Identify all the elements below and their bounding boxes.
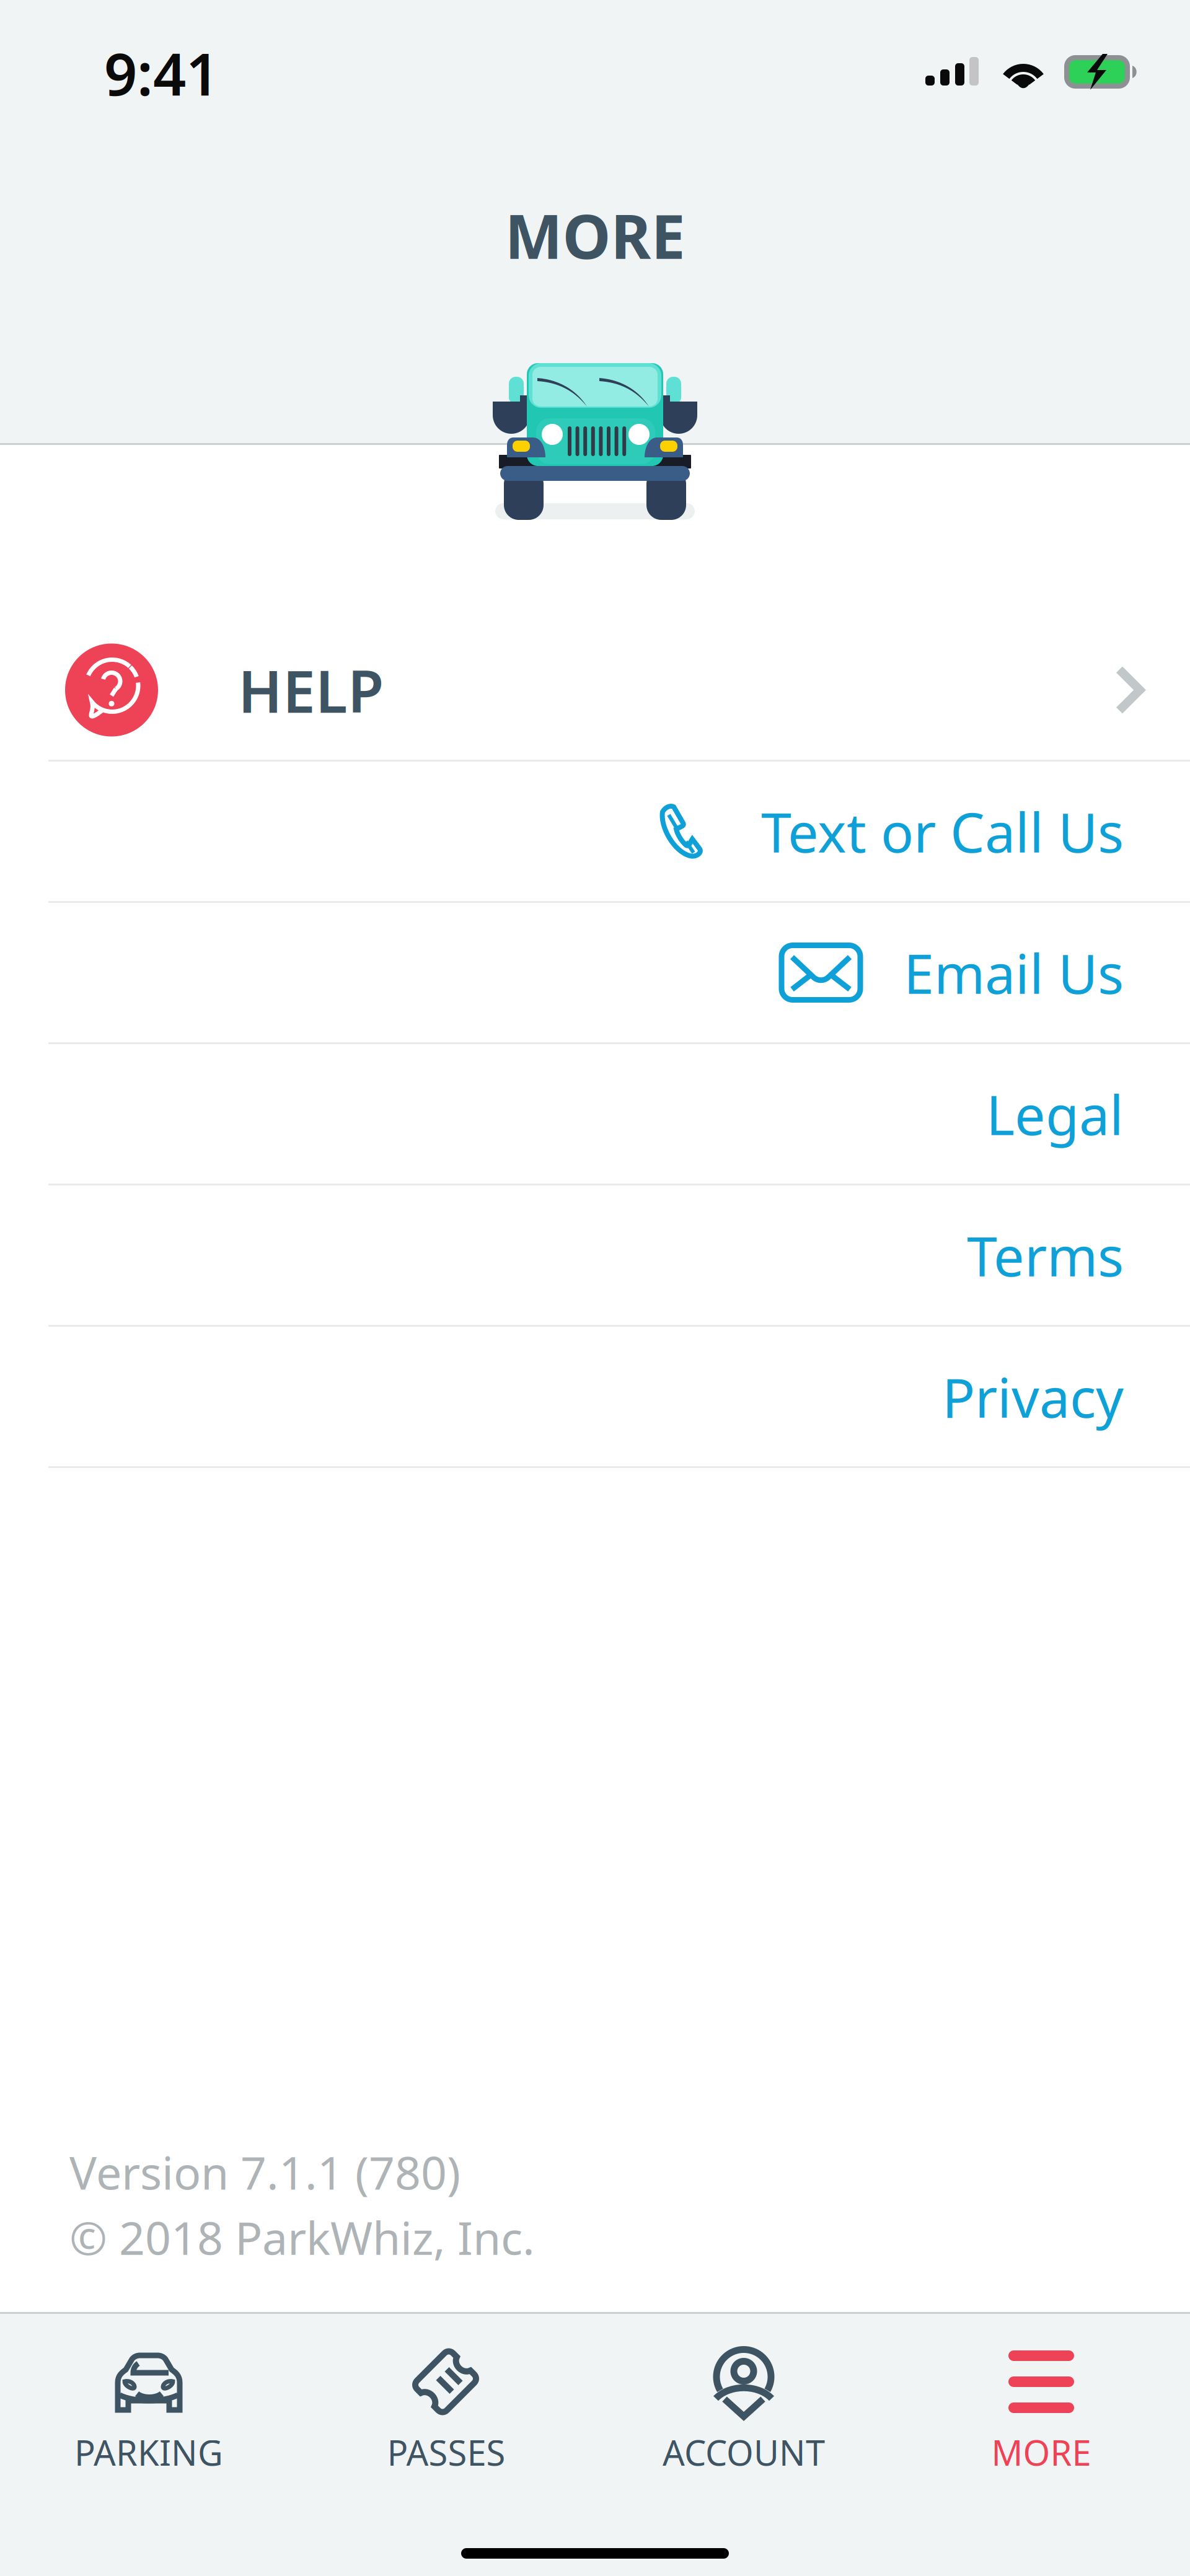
staticText: PASSES [387, 2429, 505, 2475]
staticText: Version 7.1.1 (780) [69, 2142, 461, 2202]
button[interactable]: Terms [0, 1185, 1190, 1327]
staticText: Email Us [904, 936, 1124, 1009]
button[interactable]: Legal [0, 1044, 1190, 1185]
button[interactable]: MORE [892, 2319, 1190, 2494]
button[interactable]: Email Us [0, 903, 1190, 1044]
button[interactable]: ACCOUNT [595, 2319, 892, 2494]
button[interactable]: PASSES [297, 2319, 595, 2494]
staticText: Text or Call Us [761, 795, 1124, 868]
button[interactable]: PARKING [0, 2319, 297, 2494]
button[interactable]: HELP [0, 620, 1190, 762]
staticText: MORE [505, 195, 685, 276]
staticText: © 2018 ParkWhiz, Inc. [69, 2207, 535, 2267]
staticText: Legal [986, 1078, 1124, 1150]
button[interactable]: Text or Call Us [0, 762, 1190, 903]
staticText: HELP [238, 651, 384, 729]
staticText: Privacy [942, 1360, 1124, 1433]
staticText: Terms [967, 1219, 1124, 1291]
staticText: ACCOUNT [663, 2429, 825, 2475]
staticText: PARKING [74, 2429, 223, 2475]
staticText: MORE [991, 2429, 1091, 2475]
staticText: 9:41 [104, 35, 219, 111]
button[interactable]: Privacy [0, 1327, 1190, 1468]
